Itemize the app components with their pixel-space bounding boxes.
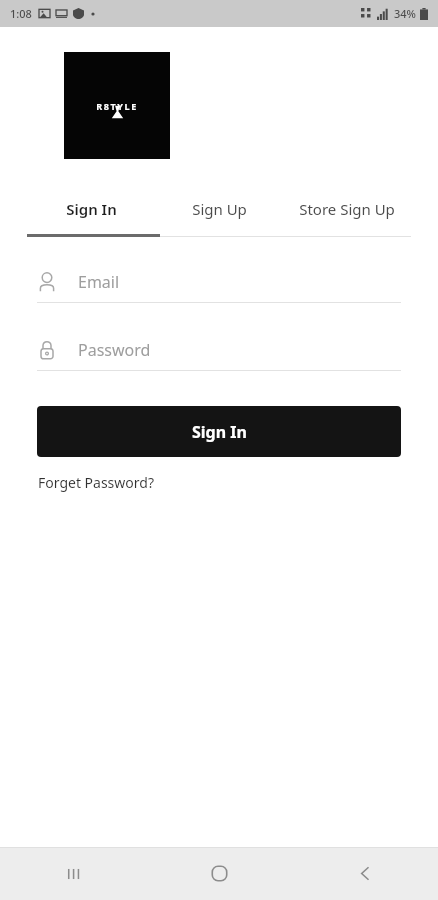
button[interactable]: Sign In — [27, 184, 155, 234]
button[interactable]: Sign Up — [155, 184, 283, 234]
button[interactable]: R8TYLE logo — [64, 52, 170, 159]
staticText: Sign In — [192, 421, 247, 443]
staticText: Sign In — [66, 199, 117, 219]
button[interactable]: Back — [292, 847, 438, 900]
staticText: Email — [78, 271, 120, 293]
button[interactable]: Sign In — [37, 406, 401, 457]
staticText: 1:08 — [10, 6, 32, 21]
button[interactable]: Home — [146, 847, 292, 900]
staticText: Forget Password? — [38, 473, 154, 492]
staticText: Password — [78, 339, 151, 361]
staticText: Sign Up — [192, 199, 247, 219]
staticText: Store Sign Up — [299, 199, 395, 219]
staticText: 34% — [394, 6, 416, 21]
button[interactable]: Store Sign Up — [283, 184, 411, 234]
staticText: R8TYLE — [96, 100, 138, 112]
button[interactable]: Password — [37, 330, 401, 371]
button[interactable]: Email — [37, 262, 401, 303]
button[interactable]: Recent apps — [0, 847, 146, 900]
button[interactable]: Forget Password? — [37, 469, 155, 496]
